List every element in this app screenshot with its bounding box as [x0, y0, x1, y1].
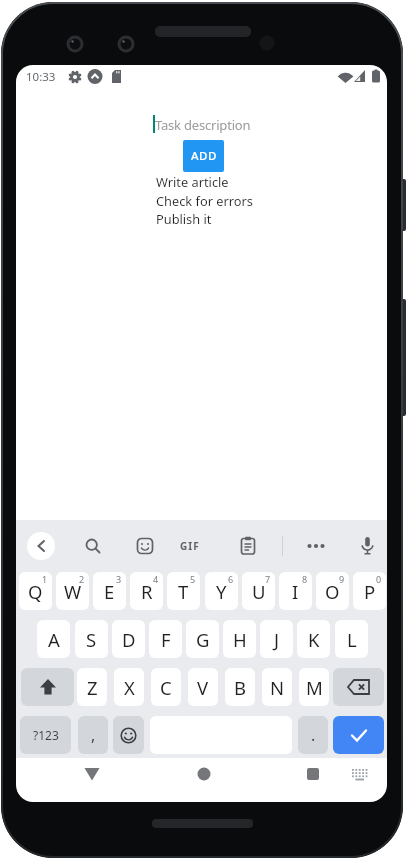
staticText: O	[325, 579, 340, 604]
staticText: Write article	[156, 173, 229, 190]
staticText: Z	[87, 675, 98, 700]
staticText: 5	[190, 573, 196, 585]
button[interactable]: I	[279, 572, 312, 610]
staticText: K	[308, 627, 320, 652]
staticText: 4	[153, 573, 159, 585]
staticText: 10:33	[26, 69, 56, 85]
button[interactable]	[307, 541, 325, 551]
staticText: E	[104, 579, 115, 604]
staticText: B	[234, 675, 247, 700]
button[interactable]: Q	[19, 572, 52, 610]
button[interactable]: .	[298, 716, 328, 754]
button[interactable]: U	[242, 572, 275, 610]
button[interactable]	[27, 532, 55, 560]
button[interactable]: A	[37, 620, 70, 658]
button[interactable]: Y	[205, 572, 238, 610]
staticText: U	[252, 579, 266, 604]
button[interactable]: B	[225, 668, 255, 706]
button[interactable]: H	[223, 620, 256, 658]
staticText: V	[197, 675, 209, 700]
staticText: 6	[228, 573, 234, 585]
staticText: Q	[28, 579, 43, 604]
staticText: N	[270, 675, 285, 700]
staticText: D	[122, 627, 136, 652]
staticText: 1	[42, 573, 48, 585]
staticText: P	[364, 579, 376, 604]
button[interactable]: V	[188, 668, 218, 706]
staticText: 0	[376, 573, 382, 585]
button[interactable]: E	[93, 572, 126, 610]
button[interactable]: P	[353, 572, 386, 610]
button[interactable]	[307, 768, 319, 780]
staticText: Publish it	[156, 210, 212, 227]
staticText: G	[196, 627, 210, 652]
staticText: ?123	[33, 727, 59, 743]
staticText: Y	[216, 579, 227, 604]
button[interactable]: S	[75, 620, 108, 658]
staticText: ADD	[191, 148, 217, 164]
staticText: S	[86, 627, 97, 652]
staticText: X	[124, 675, 135, 700]
button[interactable]	[113, 716, 144, 754]
button[interactable]: T	[167, 572, 200, 610]
button[interactable]: G	[186, 620, 219, 658]
staticText: 3	[116, 573, 122, 585]
button[interactable]: ADD	[183, 140, 224, 172]
staticText: ,	[91, 724, 96, 746]
staticText: I	[292, 579, 299, 604]
staticText: W	[64, 579, 82, 604]
button[interactable]	[240, 536, 256, 555]
button[interactable]: K	[297, 620, 330, 658]
staticText: 7	[265, 573, 271, 585]
button[interactable]	[21, 668, 74, 706]
button[interactable]: GIF	[180, 539, 200, 553]
staticText: L	[347, 627, 357, 652]
staticText: H	[233, 627, 247, 652]
staticText: Task description	[155, 116, 251, 134]
staticText: 9	[339, 573, 345, 585]
button[interactable]	[84, 767, 100, 781]
button[interactable]: D	[112, 620, 145, 658]
button[interactable]	[136, 537, 154, 555]
button[interactable]	[84, 537, 102, 555]
button[interactable]: N	[262, 668, 292, 706]
staticText: R	[141, 579, 153, 604]
staticText: A	[48, 627, 60, 652]
button[interactable]: F	[149, 620, 182, 658]
button[interactable]	[360, 536, 375, 556]
button[interactable]	[333, 716, 384, 754]
staticText: .	[311, 724, 316, 746]
button[interactable]: C	[151, 668, 181, 706]
staticText: GIF	[180, 539, 200, 553]
button[interactable]: X	[114, 668, 144, 706]
button[interactable]: W	[56, 572, 89, 610]
button[interactable]	[351, 768, 368, 781]
button[interactable]: Z	[77, 668, 107, 706]
button[interactable]: O	[316, 572, 349, 610]
button[interactable]: J	[260, 620, 293, 658]
button[interactable]: L	[335, 620, 368, 658]
button[interactable]: ?123	[20, 716, 71, 754]
staticText: F	[161, 627, 171, 652]
staticText: 8	[302, 573, 308, 585]
staticText: Check for errors	[156, 192, 253, 209]
staticText: J	[274, 627, 280, 652]
staticText: T	[178, 579, 189, 604]
button[interactable]: R	[130, 572, 163, 610]
staticText: M	[306, 675, 323, 700]
button[interactable]	[136, 110, 299, 138]
staticText: C	[160, 675, 172, 700]
button[interactable]: ,	[78, 716, 108, 754]
button[interactable]	[333, 668, 384, 706]
button[interactable]	[197, 767, 211, 781]
staticText: 2	[79, 573, 85, 585]
button[interactable]: M	[299, 668, 329, 706]
